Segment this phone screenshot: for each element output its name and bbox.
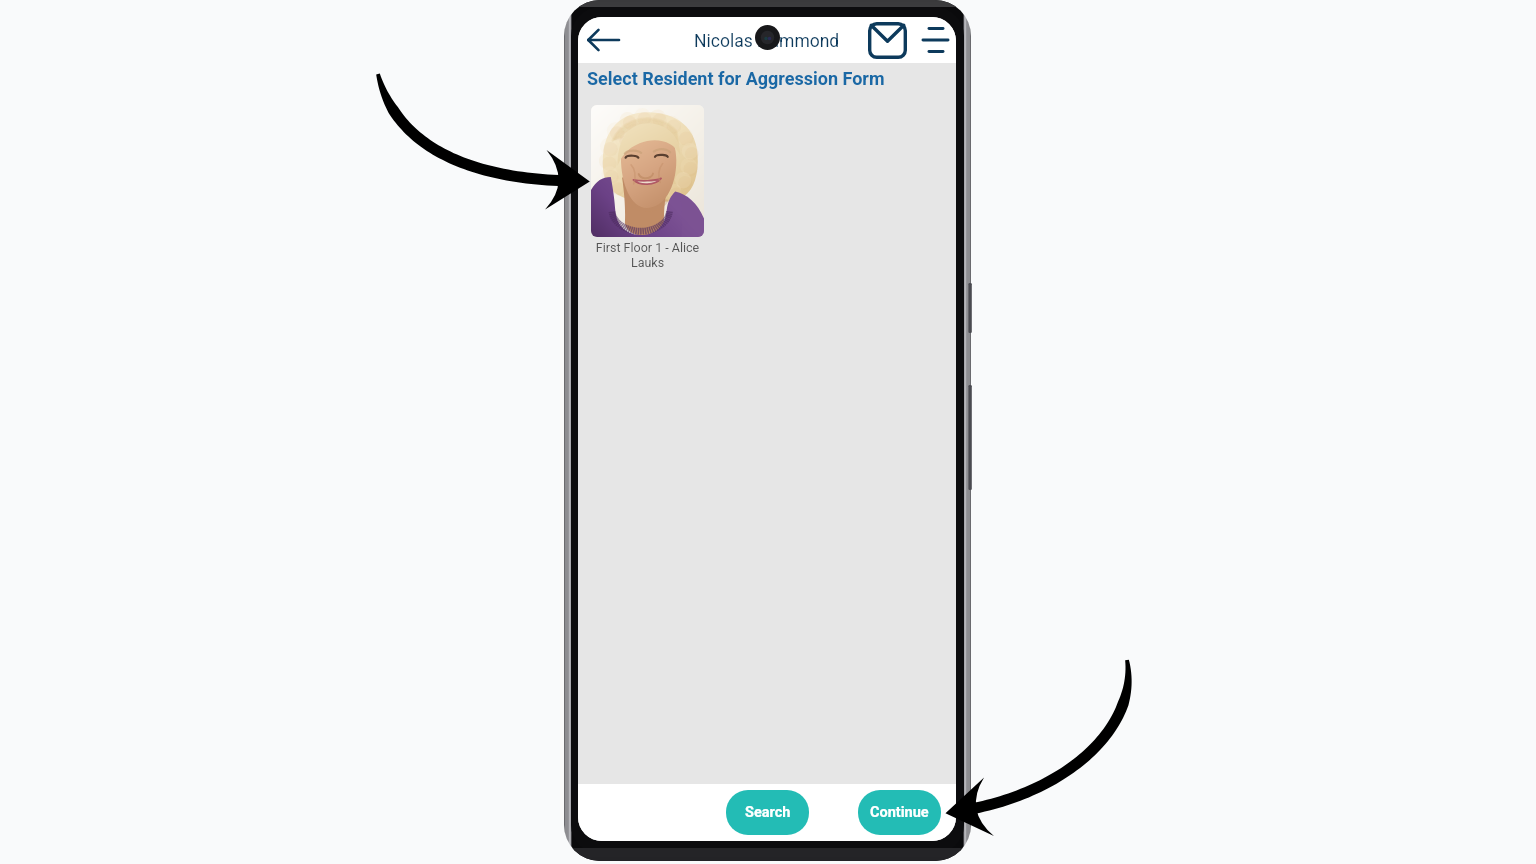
button[interactable]: Menu: [915, 20, 955, 60]
button[interactable]: Back: [582, 19, 624, 61]
button[interactable]: Search: [726, 790, 809, 835]
staticText: Nicolas Hammond: [694, 31, 840, 52]
staticText: Search: [745, 804, 791, 821]
staticText: First Floor 1 - Alice Lauks: [591, 240, 704, 270]
button[interactable]: First Floor 1 - Alice Lauks: [591, 105, 704, 270]
staticText: Select Resident for Aggression Form: [587, 68, 885, 89]
staticText: Continue: [870, 804, 929, 821]
button[interactable]: Continue: [858, 790, 941, 835]
button[interactable]: Messages: [865, 18, 909, 62]
